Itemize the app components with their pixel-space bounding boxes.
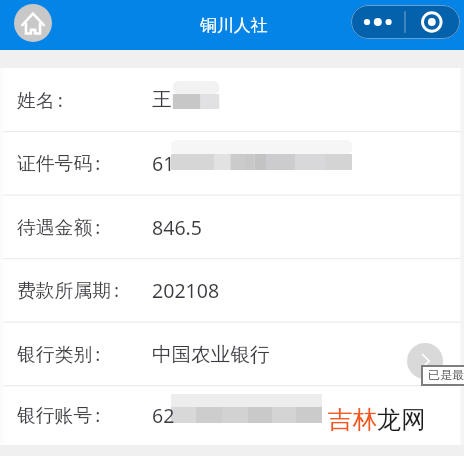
button[interactable]: 费款所属期 :: [0, 258, 464, 322]
staticText: 王: [152, 87, 172, 112]
staticText: 已是最新: [428, 367, 464, 384]
button[interactable]: 证件号码 :: [0, 131, 464, 195]
staticText: 银行账号 :: [17, 402, 101, 428]
button[interactable]: Next page: [407, 343, 443, 379]
staticText: 202108: [152, 277, 220, 304]
staticText: 61: [152, 150, 175, 177]
staticText: 62: [152, 402, 175, 429]
staticText: 846.5: [152, 214, 203, 241]
staticText: 铜川人社: [200, 15, 268, 36]
button[interactable]: 已是最新: [423, 367, 464, 384]
button[interactable]: 待遇金额 :: [0, 195, 464, 259]
button[interactable]: Menu: [351, 5, 460, 39]
staticText: 中国农业银行: [152, 342, 270, 367]
button[interactable]: 银行类别 :: [0, 322, 464, 386]
staticText: 吉林龙网: [328, 405, 426, 436]
staticText: 姓名 :: [17, 87, 63, 113]
staticText: 证件号码 :: [17, 150, 101, 176]
button[interactable]: Home: [14, 4, 52, 42]
staticText: 费款所属期 :: [17, 277, 120, 303]
button[interactable]: 银行账号 :: [0, 385, 464, 445]
button[interactable]: 姓名 :: [0, 68, 464, 131]
staticText: 待遇金额 :: [17, 214, 101, 240]
staticText: 银行类别 :: [17, 341, 101, 367]
